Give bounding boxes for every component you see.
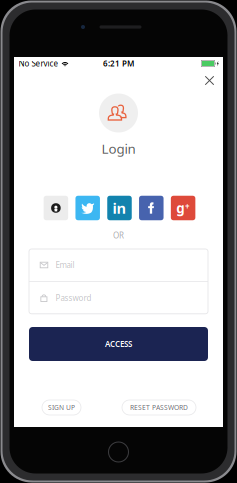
staticText: RESET PASSWORD — [130, 403, 188, 412]
button[interactable]: Email — [29, 249, 208, 281]
button[interactable]: LinkedIn — [107, 196, 132, 220]
button[interactable]: Twitter — [75, 196, 100, 220]
staticText: in — [112, 198, 126, 218]
staticText: No Service — [18, 58, 58, 69]
staticText: ACCESS — [105, 339, 132, 349]
staticText: Login — [101, 140, 135, 157]
button[interactable]: SIGN UP — [42, 400, 81, 415]
staticText: 6:21 PM — [103, 58, 134, 69]
button[interactable]: Google Plus — [171, 196, 195, 220]
staticText: Password — [55, 292, 91, 303]
button[interactable]: ACCESS — [29, 327, 208, 361]
staticText: OR — [113, 230, 124, 241]
button[interactable]: Password — [29, 282, 208, 314]
button[interactable]: Facebook — [139, 196, 164, 220]
button[interactable]: RESET PASSWORD — [122, 400, 196, 415]
staticText: + — [185, 201, 190, 212]
staticText: Email — [55, 260, 74, 270]
staticText: SIGN UP — [48, 403, 75, 412]
button[interactable]: Close — [198, 69, 220, 91]
staticText: g — [176, 199, 184, 217]
button[interactable]: GitHub — [44, 196, 68, 220]
